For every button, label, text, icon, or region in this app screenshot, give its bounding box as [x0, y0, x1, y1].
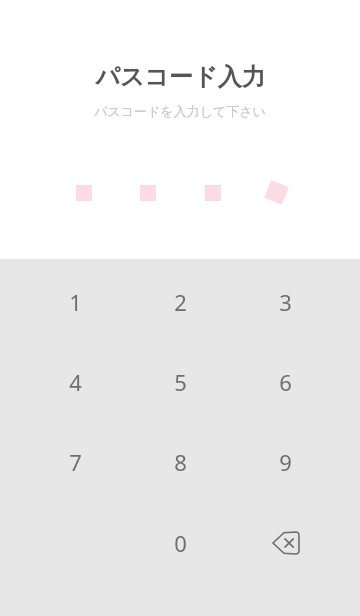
button[interactable]: 0 — [128, 503, 233, 583]
staticText: 3 — [279, 287, 292, 317]
button[interactable]: Backspace — [233, 503, 338, 583]
button[interactable]: 7 — [23, 422, 128, 502]
staticText: 1 — [69, 287, 82, 317]
staticText: パスコードを入力して下さい — [94, 103, 266, 119]
button[interactable]: 2 — [128, 262, 233, 342]
button[interactable]: 8 — [128, 422, 233, 502]
staticText: 7 — [69, 447, 82, 477]
staticText: 0 — [174, 528, 187, 558]
button[interactable]: 4 — [23, 342, 128, 422]
staticText: 9 — [279, 447, 292, 477]
staticText: 8 — [174, 447, 187, 477]
staticText: 2 — [174, 287, 187, 317]
button[interactable]: 6 — [233, 342, 338, 422]
staticText: パスコード入力 — [95, 62, 266, 92]
staticText: 5 — [174, 367, 187, 397]
button[interactable]: 3 — [233, 262, 338, 342]
button[interactable]: 5 — [128, 342, 233, 422]
staticText: 4 — [69, 367, 82, 397]
button[interactable]: 9 — [233, 422, 338, 502]
button[interactable]: 1 — [23, 262, 128, 342]
staticText: 6 — [279, 367, 292, 397]
